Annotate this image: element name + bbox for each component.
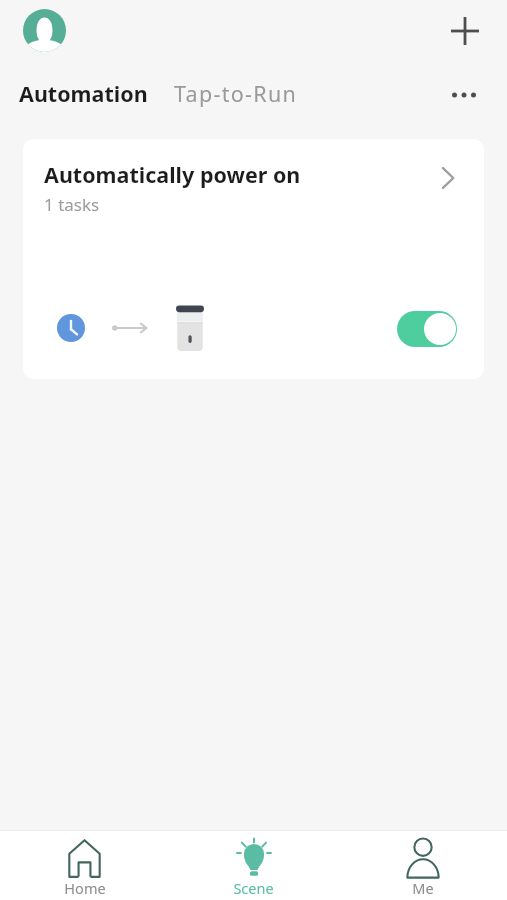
button[interactable]: Open automation details xyxy=(426,156,470,200)
button[interactable]: Toggle automation xyxy=(397,311,457,347)
button[interactable]: Automation xyxy=(12,68,155,119)
button[interactable]: Scene xyxy=(169,831,338,900)
button[interactable]: Automatically power on xyxy=(23,139,484,379)
button[interactable]: Profile xyxy=(23,9,66,52)
staticText: 1 tasks xyxy=(44,193,100,216)
staticText: Scene xyxy=(233,878,274,898)
staticText: Home xyxy=(64,878,106,898)
button[interactable]: Home xyxy=(0,831,169,900)
button[interactable]: Me xyxy=(338,831,507,900)
button[interactable]: Add xyxy=(443,9,487,53)
staticText: Automation xyxy=(19,79,148,108)
staticText: Tap-to-Run xyxy=(174,79,298,108)
button[interactable]: Tap-to-Run xyxy=(167,68,305,119)
staticText: Automatically power on xyxy=(44,160,301,189)
staticText: Me xyxy=(412,878,434,898)
button[interactable]: More options xyxy=(444,75,484,115)
